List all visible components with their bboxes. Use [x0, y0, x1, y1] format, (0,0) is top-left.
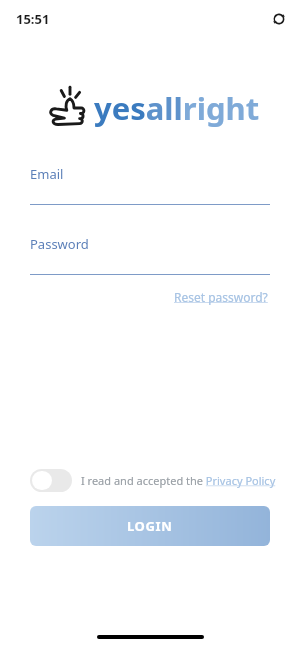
button[interactable]: Reset password?	[172, 287, 270, 307]
button[interactable]: Accept privacy policy	[30, 469, 72, 492]
staticText: I read and accepted the Privacy Policy	[81, 473, 276, 488]
staticText: Email	[30, 165, 64, 183]
staticText: Password	[30, 235, 89, 253]
staticText: yesallright	[94, 87, 260, 129]
button[interactable]: LOGIN	[30, 506, 270, 546]
other: Sync	[272, 12, 286, 26]
staticText: Reset password?	[174, 289, 268, 305]
button[interactable]: Email	[30, 165, 270, 205]
staticText: LOGIN	[127, 517, 173, 535]
staticText: 15:51	[16, 10, 50, 28]
button[interactable]: Password	[30, 235, 270, 275]
